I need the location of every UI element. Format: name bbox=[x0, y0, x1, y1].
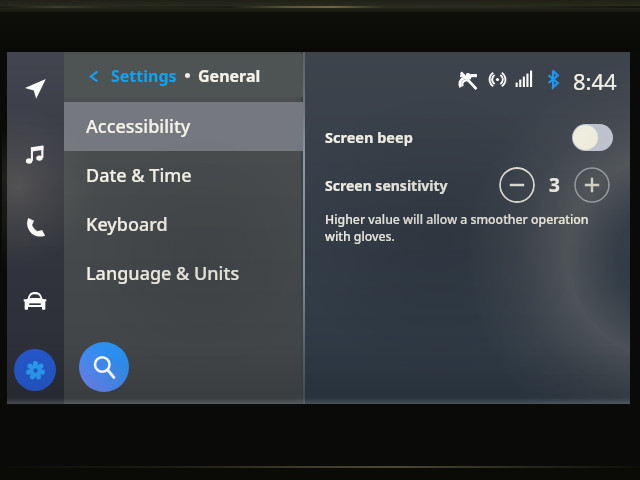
staticText: Higher value will allow a smoother opera… bbox=[325, 211, 589, 228]
staticText: with gloves. bbox=[325, 228, 395, 245]
button[interactable]: Car bbox=[17, 282, 53, 318]
button[interactable]: Back bbox=[85, 68, 101, 84]
staticText: Screen beep bbox=[325, 127, 413, 147]
button[interactable]: Screen beep bbox=[325, 115, 613, 159]
button[interactable]: Navigation bbox=[17, 70, 53, 106]
button[interactable]: Decrease bbox=[499, 167, 535, 203]
staticText: General bbox=[198, 65, 261, 87]
staticText: 3 bbox=[549, 172, 560, 198]
button[interactable]: Keyboard bbox=[64, 200, 303, 249]
staticText: Accessibility bbox=[86, 114, 191, 139]
staticText: 8:44 bbox=[573, 66, 617, 92]
button[interactable]: Settings bbox=[111, 65, 177, 87]
button[interactable]: Accessibility bbox=[64, 102, 303, 151]
staticText: Keyboard bbox=[86, 212, 168, 237]
button[interactable]: Date & Time bbox=[64, 151, 303, 200]
staticText: Date & Time bbox=[86, 163, 192, 188]
button[interactable]: Music bbox=[17, 137, 53, 173]
button[interactable]: Search bbox=[79, 342, 129, 392]
staticText: Language & Units bbox=[86, 261, 240, 286]
staticText: Screen sensitivity bbox=[325, 176, 448, 195]
button[interactable]: Settings bbox=[14, 349, 56, 391]
button[interactable]: Phone bbox=[17, 210, 53, 246]
button[interactable]: Language & Units bbox=[64, 249, 303, 298]
button[interactable]: Increase bbox=[574, 167, 610, 203]
